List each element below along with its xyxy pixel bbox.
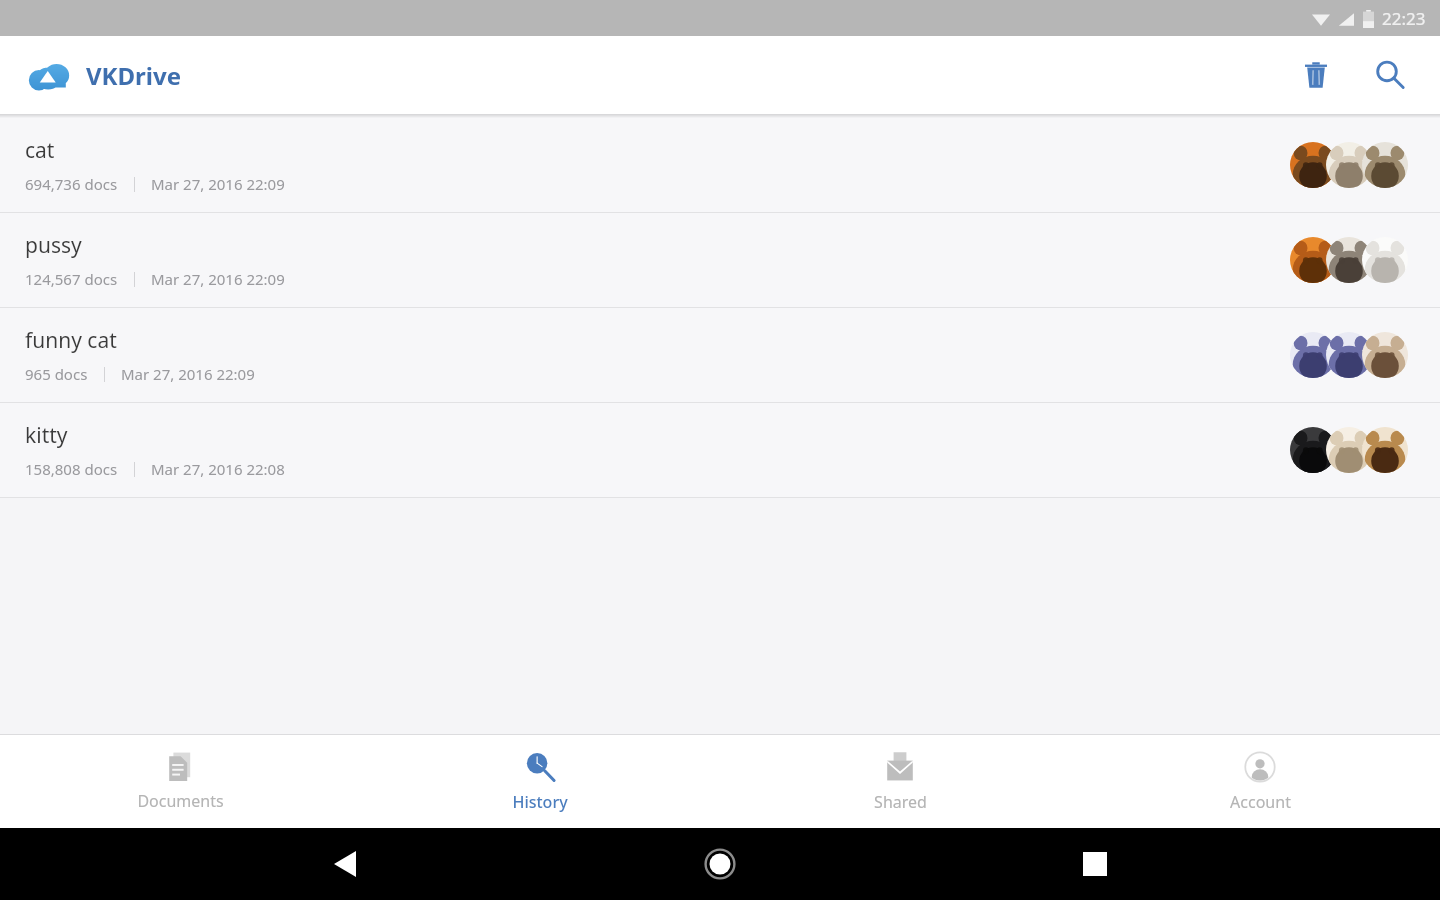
button[interactable]: VKDrive (28, 59, 182, 92)
staticText: Mar 27, 2016 22:08 (151, 459, 285, 479)
staticText: VKDrive (86, 59, 182, 92)
staticText: 158,808 docs (25, 459, 118, 479)
button[interactable]: Documents (0, 735, 360, 828)
button[interactable]: cat (0, 118, 1440, 212)
staticText: pussy (25, 231, 82, 260)
button[interactable]: Search (1362, 47, 1418, 103)
staticText: Shared (874, 791, 927, 813)
staticText: Account (1230, 791, 1291, 813)
staticText: History (512, 791, 568, 813)
button[interactable]: funny cat (0, 308, 1440, 402)
button[interactable]: Back (315, 834, 375, 894)
button[interactable]: Shared (720, 735, 1080, 828)
button[interactable]: Recent apps (1065, 834, 1125, 894)
staticText: Mar 27, 2016 22:09 (151, 174, 285, 194)
staticText: cat (25, 136, 55, 165)
staticText: 124,567 docs (25, 269, 118, 289)
staticText: Mar 27, 2016 22:09 (151, 269, 285, 289)
staticText: Documents (137, 790, 224, 812)
staticText: 694,736 docs (25, 174, 118, 194)
button[interactable]: kitty (0, 403, 1440, 497)
button[interactable]: Home (690, 834, 750, 894)
staticText: funny cat (25, 326, 117, 355)
staticText: 965 docs (25, 364, 88, 384)
button[interactable]: Account (1080, 735, 1440, 828)
button[interactable]: History (360, 735, 720, 828)
staticText: 22:23 (1382, 7, 1426, 30)
staticText: kitty (25, 421, 68, 450)
staticText: Mar 27, 2016 22:09 (121, 364, 255, 384)
button[interactable]: pussy (0, 213, 1440, 307)
button[interactable]: Delete (1288, 47, 1344, 103)
